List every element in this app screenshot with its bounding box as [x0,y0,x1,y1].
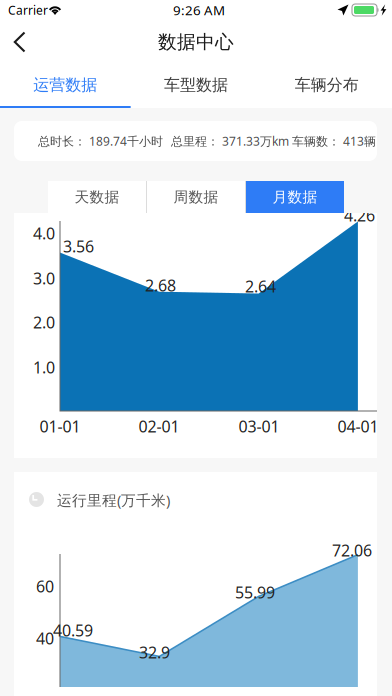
staticText: 4.0 [33,223,55,244]
staticText: 2.68 [145,275,176,296]
staticText: 周数据 [173,188,218,206]
staticText: 车辆分布 [295,75,359,95]
staticText: 32.9 [139,642,170,663]
button[interactable]: 运营数据 [0,64,131,108]
staticText: 01-01 [39,416,80,437]
button[interactable]: 车辆分布 [261,64,392,108]
staticText: Carrier [8,2,48,18]
button[interactable]: 周数据 [147,181,245,213]
staticText: 03-01 [238,416,279,437]
staticText: 运行里程(万千米) [57,490,170,510]
staticText: 55.99 [235,582,275,603]
button[interactable]: 天数据 [48,181,146,213]
staticText: 月数据 [272,188,317,206]
staticText: 车型数据 [164,75,228,95]
staticText: 天数据 [74,188,119,206]
staticText: 9:26 AM [173,1,225,19]
staticText: 3.56 [63,236,94,257]
button[interactable]: 月数据 [246,181,344,213]
staticText: 60 [36,576,54,597]
staticText: 总时长： 189.74千小时 总里程： 371.33万km 车辆数： 413辆 [38,133,376,149]
staticText: 72.06 [332,540,372,561]
staticText: 40 [36,628,54,649]
staticText: 04-01 [337,416,378,437]
button[interactable]: 车型数据 [131,64,261,108]
staticText: 数据中心 [158,30,234,53]
staticText: 2.0 [33,312,55,333]
staticText: 4.26 [344,205,375,226]
staticText: 02-01 [138,416,179,437]
staticText: 运营数据 [33,75,97,95]
button[interactable]: Back [0,20,40,64]
staticText: 2.64 [245,276,276,297]
staticText: 1.0 [33,357,55,378]
staticText: 40.59 [53,620,93,641]
staticText: 3.0 [33,268,55,289]
